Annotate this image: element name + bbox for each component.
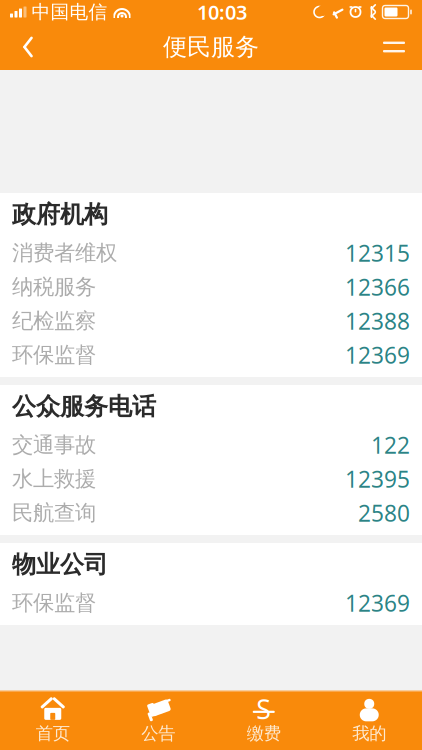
staticText: 纪检监察 — [12, 308, 96, 334]
button[interactable]: 首页 — [0, 692, 105, 750]
staticText: 水上救援 — [12, 466, 96, 492]
staticText: 首页 — [36, 723, 70, 744]
staticText: 12388 — [345, 306, 410, 336]
button[interactable]: 环保监督 — [0, 338, 422, 372]
staticText: 12369 — [345, 340, 410, 370]
button[interactable]: 纳税服务 — [0, 270, 422, 304]
button[interactable]: 交通事故 — [0, 428, 422, 462]
button[interactable]: 纪检监察 — [0, 304, 422, 338]
staticText: 12395 — [345, 464, 410, 494]
staticText: 消费者维权 — [12, 240, 117, 266]
button[interactable]: 环保监督 — [0, 586, 422, 620]
staticText: 公告 — [141, 723, 175, 744]
staticText: 纳税服务 — [12, 274, 96, 300]
staticText: 便民服务 — [163, 32, 259, 62]
staticText: 122 — [371, 430, 410, 460]
staticText: 2580 — [358, 498, 410, 528]
button[interactable]: Back — [6, 25, 50, 69]
staticText: 交通事故 — [12, 432, 96, 458]
staticText: 中国电信 — [31, 0, 107, 23]
staticText: 缴费 — [247, 723, 281, 744]
button[interactable]: 消费者维权 — [0, 236, 422, 270]
staticText: 民航查询 — [12, 500, 96, 526]
staticText: 环保监督 — [12, 590, 96, 616]
staticText: 12366 — [345, 272, 410, 302]
staticText: 12315 — [345, 238, 410, 268]
staticText: 物业公司 — [12, 550, 108, 579]
staticText: 我的 — [352, 723, 386, 744]
staticText: 环保监督 — [12, 342, 96, 368]
button[interactable]: Menu — [372, 25, 416, 69]
staticText: 政府机构 — [12, 200, 108, 229]
button[interactable]: 民航查询 — [0, 496, 422, 530]
staticText: 12369 — [345, 588, 410, 618]
staticText: 10:03 — [197, 0, 247, 25]
button[interactable]: 我的 — [316, 692, 422, 750]
staticText: S — [256, 691, 271, 726]
button[interactable]: S — [211, 692, 316, 750]
button[interactable]: 公告 — [105, 692, 211, 750]
staticText: 公众服务电话 — [12, 392, 156, 421]
button[interactable]: 水上救援 — [0, 462, 422, 496]
